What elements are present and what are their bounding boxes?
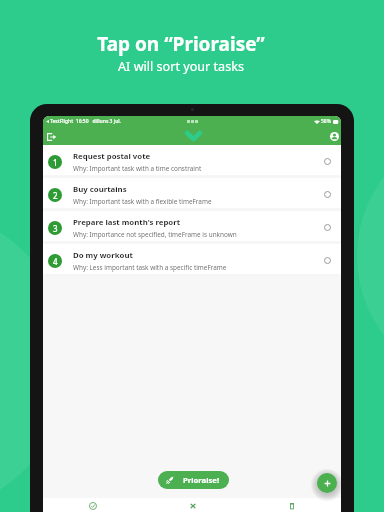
staticText: 3: [53, 223, 58, 234]
staticText: 1: [53, 157, 58, 168]
staticText: Prioraise!: [183, 475, 220, 485]
staticText: Why: Less important task with a specific…: [73, 263, 227, 272]
button[interactable]: Done: [43, 498, 143, 512]
button[interactable]: Account: [327, 129, 341, 144]
button[interactable]: 3: [43, 211, 341, 241]
button[interactable]: 1: [43, 145, 341, 175]
staticText: Why: Importance not specified, timeFrame…: [73, 230, 237, 239]
staticText: AI will sort your tasks: [118, 58, 244, 75]
staticText: 58%: [321, 118, 331, 125]
button[interactable]: Prioraise!: [158, 471, 229, 489]
staticText: 4: [53, 256, 58, 267]
staticText: Why: Important task with a flexible time…: [73, 197, 212, 206]
staticText: Do my workout: [73, 250, 133, 261]
button[interactable]: Archive: [242, 498, 341, 512]
button[interactable]: 2: [43, 178, 341, 208]
staticText: TestFlight 16:50 dilluns 3 jul.: [50, 118, 121, 125]
staticText: 2: [53, 190, 58, 201]
button[interactable]: 4: [43, 244, 341, 274]
button[interactable]: Dismiss: [143, 498, 242, 512]
staticText: Tap on “Prioraise”: [97, 31, 265, 57]
staticText: Buy courtains: [73, 184, 127, 195]
button[interactable]: Log out: [44, 129, 59, 144]
staticText: Request postal vote: [73, 151, 151, 162]
staticText: Why: Important task with a time constrai…: [73, 164, 202, 173]
button[interactable]: Add task: [317, 473, 337, 493]
staticText: Prepare last month's report: [73, 217, 181, 228]
